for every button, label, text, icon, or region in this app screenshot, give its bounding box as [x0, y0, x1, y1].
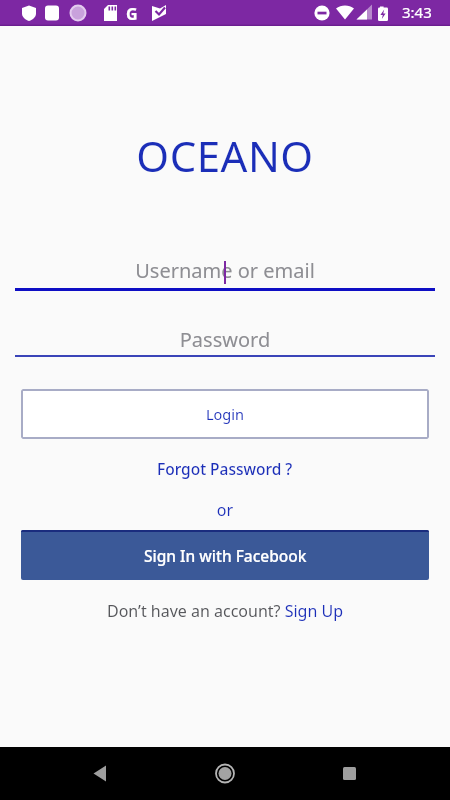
staticText: Login: [206, 404, 244, 424]
button[interactable]: [150, 747, 300, 800]
button[interactable]: Sign In with Facebook: [21, 530, 429, 580]
staticText: Username or email: [15, 257, 435, 284]
button[interactable]: Password: [15, 324, 435, 354]
button[interactable]: Forgot Password ?: [157, 458, 293, 479]
staticText: Don’t have an account? Sign Up: [107, 600, 344, 622]
staticText: OCEANO: [0, 127, 450, 184]
button[interactable]: Login: [21, 389, 429, 439]
staticText: Forgot Password ?: [157, 458, 293, 479]
button[interactable]: Don’t have an account? Sign Up: [107, 600, 344, 622]
staticText: G: [126, 3, 138, 25]
button[interactable]: [300, 747, 450, 800]
staticText: or: [0, 499, 450, 521]
button[interactable]: Username or email: [15, 252, 435, 288]
button[interactable]: [0, 747, 150, 800]
staticText: Password: [15, 326, 435, 353]
staticText: Sign In with Facebook: [144, 545, 307, 566]
staticText: 3:43: [402, 2, 432, 22]
